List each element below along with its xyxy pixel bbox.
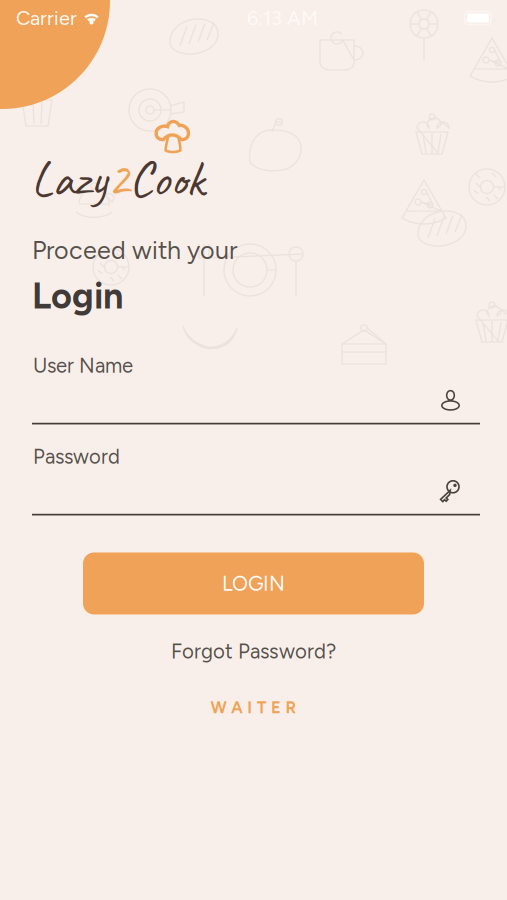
button[interactable]: LOGIN	[83, 552, 424, 614]
staticText: E	[271, 697, 281, 717]
staticText: A	[231, 697, 243, 717]
staticText: Forgot Password?	[171, 639, 336, 664]
staticText: T	[257, 697, 267, 717]
staticText: R	[285, 697, 296, 717]
staticText: Carrier	[16, 6, 77, 30]
staticText: Login	[32, 274, 123, 317]
staticText: 6:13 AM	[247, 6, 318, 30]
staticText: Password	[33, 444, 120, 469]
staticText: Proceed with your	[32, 235, 237, 265]
staticText: User Name	[33, 353, 133, 378]
staticText: Lazy	[31, 148, 107, 210]
staticText: LOGIN	[222, 571, 285, 596]
staticText: 2	[107, 148, 129, 210]
staticText: W	[210, 697, 226, 717]
staticText: I	[247, 697, 252, 717]
button[interactable]: Forgot Password?	[0, 635, 507, 667]
staticText: Cook	[129, 148, 204, 210]
